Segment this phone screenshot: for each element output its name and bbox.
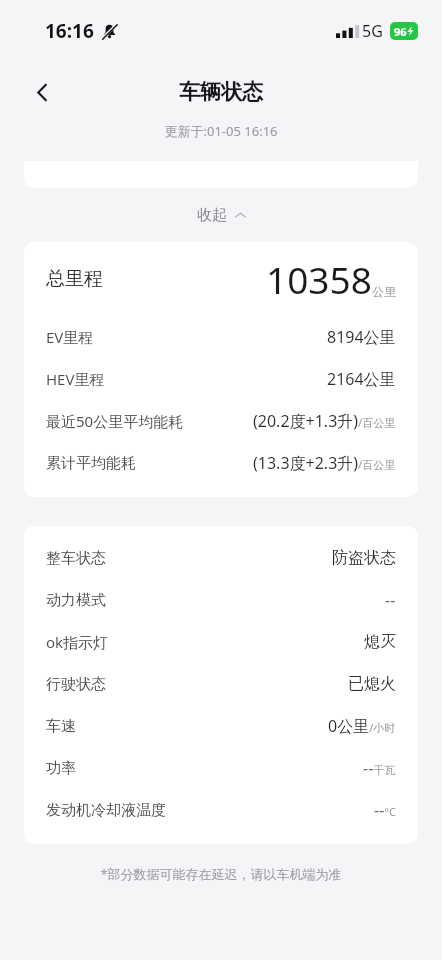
button[interactable]: HEV里程 — [24, 358, 418, 400]
staticText: 发动机冷却液温度 — [46, 801, 166, 820]
staticText: ok指示灯 — [46, 632, 109, 652]
staticText: (13.3度+2.3升)/百公里 — [253, 452, 396, 474]
button[interactable]: 收起 — [181, 198, 262, 233]
button[interactable]: 累计平均能耗 — [24, 442, 418, 484]
staticText: 5G — [362, 20, 383, 42]
staticText: --千瓦 — [363, 757, 396, 779]
staticText: 车速 — [46, 717, 76, 736]
button[interactable]: 行驶状态 — [24, 663, 418, 705]
staticText: 收起 — [197, 206, 227, 225]
staticText: 更新于:01-05 16:16 — [0, 122, 442, 140]
button[interactable]: 整车状态 — [24, 537, 418, 579]
staticText: HEV里程 — [46, 369, 105, 389]
staticText: 8194公里 — [327, 326, 396, 348]
staticText: 96 — [394, 24, 407, 39]
staticText: 功率 — [46, 759, 76, 778]
staticText: 防盗状态 — [332, 548, 396, 568]
staticText: 车辆状态 — [179, 79, 263, 105]
staticText: 2164公里 — [327, 368, 396, 390]
button[interactable]: 车速 — [24, 705, 418, 747]
button[interactable]: 最近50公里平均能耗 — [24, 400, 418, 442]
staticText: *部分数据可能存在延迟，请以车机端为准 — [0, 865, 442, 883]
staticText: -- — [385, 589, 396, 611]
button[interactable]: 功率 — [24, 747, 418, 789]
staticText: EV里程 — [46, 327, 94, 347]
staticText: 整车状态 — [46, 549, 106, 568]
staticText: 已熄火 — [348, 674, 396, 694]
button[interactable]: 动力模式 — [24, 579, 418, 621]
button[interactable]: EV里程 — [24, 316, 418, 358]
button[interactable]: 总里程 — [24, 242, 418, 316]
staticText: 行驶状态 — [46, 675, 106, 694]
staticText: 总里程 — [46, 267, 103, 291]
button[interactable]: 发动机冷却液温度 — [24, 789, 418, 831]
staticText: 熄灭 — [364, 632, 396, 652]
staticText: 动力模式 — [46, 591, 106, 610]
staticText: 10358 — [266, 254, 372, 304]
staticText: (20.2度+1.3升)/百公里 — [253, 410, 396, 432]
button[interactable]: Back — [24, 74, 60, 110]
staticText: 16:16 — [45, 18, 94, 44]
staticText: 最近50公里平均能耗 — [46, 411, 184, 431]
staticText: 公里 — [372, 284, 396, 299]
staticText: --°C — [374, 799, 396, 821]
staticText: 累计平均能耗 — [46, 454, 136, 473]
staticText: 0公里/小时 — [328, 715, 396, 737]
button[interactable]: ok指示灯 — [24, 621, 418, 663]
